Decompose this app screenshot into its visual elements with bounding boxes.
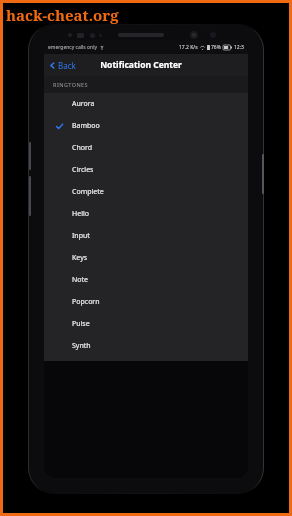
staticText: Notification Center [100,59,182,71]
staticText: 17.2 K/s [179,44,198,51]
staticText: hack-cheat.org [6,5,119,25]
staticText: Circles [72,165,94,175]
staticText: Hello [72,209,89,219]
staticText: Popcorn [72,297,100,307]
staticText: Keys [72,253,88,263]
button[interactable]: Keys [44,247,248,269]
staticText: 12:3 [234,44,244,51]
button[interactable]: Popcorn [44,291,248,313]
staticText: emergency calls only [48,44,98,51]
staticText: Synth [72,341,91,351]
button[interactable]: Circles [44,159,248,181]
staticText: RINGTONES [53,81,88,88]
staticText: Back [58,60,76,71]
button[interactable]: Note [44,269,248,291]
button[interactable]: Synth [44,335,248,357]
button[interactable]: Back [44,57,81,74]
staticText: Note [72,275,89,285]
staticText: Complete [72,187,104,197]
button[interactable]: Pulse [44,313,248,335]
staticText: Pulse [72,319,90,329]
button[interactable]: Chord [44,137,248,159]
button[interactable]: Aurora [44,93,248,115]
staticText: Bamboo [72,121,100,131]
button[interactable]: Complete [44,181,248,203]
button[interactable]: Bamboo [44,115,248,137]
staticText: Aurora [72,99,95,109]
staticText: Chord [72,143,93,153]
button[interactable]: Hello [44,203,248,225]
staticText: 76% [211,44,221,51]
button[interactable]: Input [44,225,248,247]
staticText: Input [72,231,90,241]
